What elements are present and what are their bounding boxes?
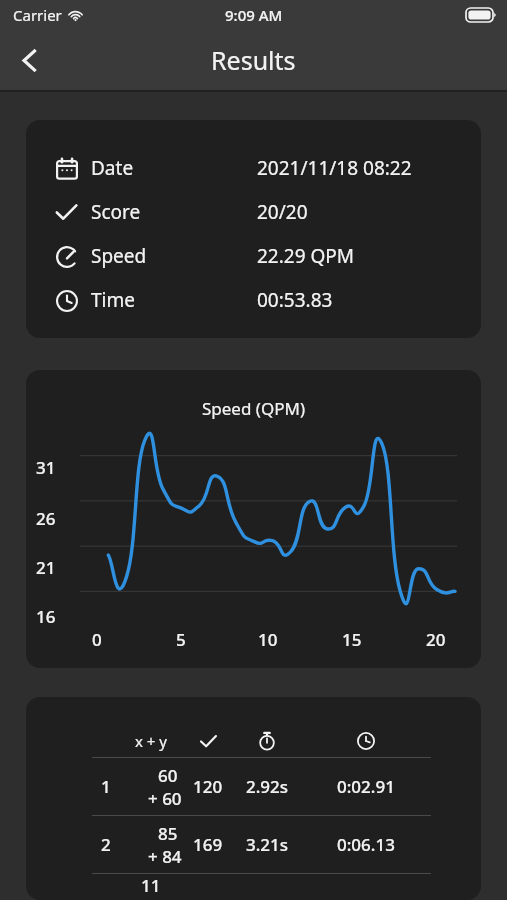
staticText: 0:06.13 — [337, 833, 395, 856]
staticText: 20/20 — [257, 199, 308, 225]
staticText: 9:09 AM — [225, 5, 283, 25]
staticText: Date — [91, 155, 134, 181]
staticText: 21 — [36, 556, 56, 579]
staticText: 169 — [193, 833, 223, 856]
staticText: 10 — [258, 628, 278, 651]
staticText: 26 — [36, 507, 56, 530]
staticText: 00:53.83 — [257, 287, 333, 313]
staticText: 85 — [158, 822, 178, 845]
staticText: + 84 — [148, 845, 182, 868]
staticText: 60 — [158, 764, 178, 787]
staticText: 16 — [36, 605, 56, 628]
staticText: Time — [91, 287, 135, 313]
staticText: 1 — [101, 775, 111, 798]
staticText: x + y — [135, 731, 167, 751]
staticText: 20 — [426, 628, 446, 651]
staticText: 22.29 QPM — [257, 243, 355, 269]
button[interactable]: 2 — [92, 816, 431, 873]
staticText: + 60 — [148, 787, 182, 810]
staticText: Results — [211, 43, 296, 77]
staticText: Score — [91, 199, 141, 225]
staticText: 0:02.91 — [337, 775, 395, 798]
staticText: 2 — [101, 833, 111, 856]
staticText: 2021/11/18 08:22 — [257, 155, 412, 181]
staticText: Speed (QPM) — [26, 397, 481, 420]
staticText: Speed — [91, 243, 147, 269]
button[interactable]: Back — [0, 30, 58, 90]
staticText: Carrier — [13, 5, 62, 25]
button[interactable]: 1 — [92, 758, 431, 815]
staticText: 0 — [92, 628, 102, 651]
staticText: 120 — [193, 775, 223, 798]
staticText: 3.21s — [246, 833, 289, 856]
staticText: 2.92s — [246, 775, 289, 798]
staticText: 5 — [176, 628, 186, 651]
staticText: 31 — [36, 456, 56, 479]
staticText: 11 — [141, 874, 161, 897]
staticText: 15 — [342, 628, 362, 651]
